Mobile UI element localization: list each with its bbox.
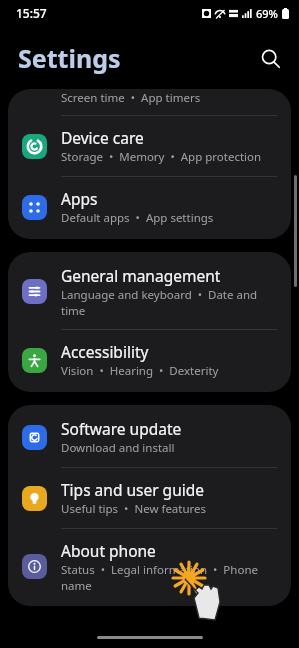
button[interactable]: Tips and user guide [8,468,291,528]
staticText: Default apps • App settings [61,210,214,226]
button[interactable]: Search [253,41,287,75]
staticText: Apps [61,188,98,209]
staticText: Device care [61,127,144,148]
staticText: Software update [61,418,182,439]
button[interactable]: Device care [8,116,291,176]
staticText: General management [61,265,221,286]
staticText: Status • Legal information • Phone name [61,562,258,593]
button[interactable]: Apps [8,177,291,239]
staticText: 15:57 [16,5,47,21]
staticText: Screen time • App timers [61,90,201,106]
button[interactable]: Accessibility [8,330,291,392]
staticText: Settings [18,41,121,75]
staticText: About phone [61,540,156,561]
staticText: 69% [256,6,278,21]
staticText: Tips and user guide [61,479,205,500]
staticText: Storage • Memory • App protection [61,149,262,165]
staticText: Download and install [61,440,175,456]
button[interactable]: Screen time • App timers [8,89,291,115]
staticText: Useful tips • New features [61,501,207,517]
staticText: Language and keyboard • Date and time [61,287,258,318]
staticText: Accessibility [61,341,149,362]
staticText: Vision • Hearing • Dexterity [61,363,219,379]
button[interactable]: General management [8,252,291,329]
button[interactable]: Software update [8,405,291,467]
button[interactable]: About phone [8,529,291,606]
